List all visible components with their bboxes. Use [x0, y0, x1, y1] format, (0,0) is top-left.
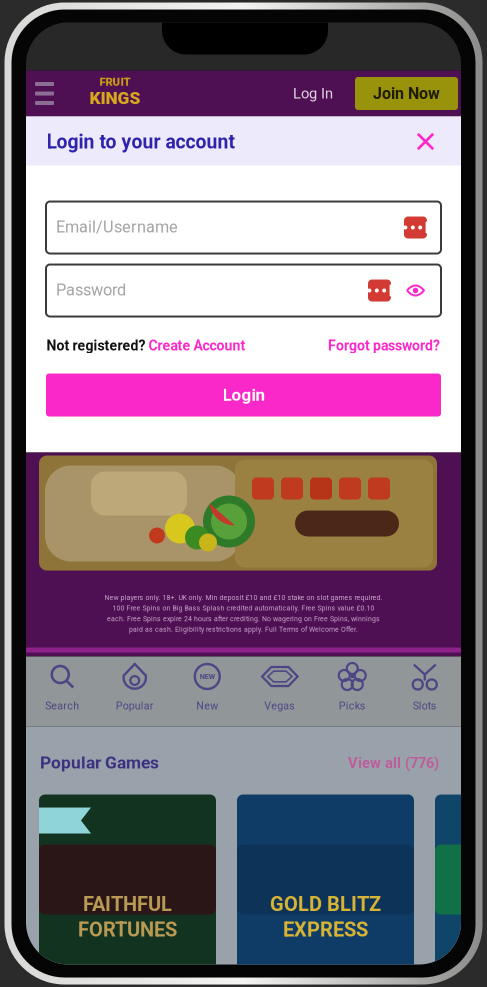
button[interactable]: Login — [46, 373, 441, 416]
staticText: Search — [45, 699, 79, 712]
staticText: EXPRESS — [283, 918, 368, 941]
button[interactable]: FAITHFUL — [39, 794, 216, 971]
button[interactable]: Join Now — [355, 77, 458, 110]
staticText: Popular — [116, 699, 154, 712]
button[interactable]: Slots — [388, 656, 461, 726]
staticText: Popular Games — [40, 752, 159, 773]
button[interactable] — [435, 794, 487, 971]
staticText: each. Free Spins expire 24 hours after c… — [107, 615, 380, 623]
button[interactable]: GOLD BLITZ — [237, 794, 414, 971]
button[interactable]: Close — [408, 124, 442, 158]
staticText: FAITHFUL — [83, 892, 172, 916]
button[interactable]: Log In — [284, 70, 342, 116]
button[interactable]: Search — [26, 656, 98, 726]
staticText: Not registered? — [46, 337, 145, 354]
staticText: NEW — [200, 672, 215, 681]
staticText: Login — [222, 385, 264, 405]
staticText: Slots — [413, 699, 437, 712]
staticText: GOLD BLITZ — [270, 892, 381, 916]
button[interactable]: Popular — [98, 656, 171, 726]
staticText: New players only. 18+. UK only. Min depo… — [104, 593, 382, 602]
staticText: Create Account — [148, 337, 245, 354]
button[interactable]: Password — [46, 264, 441, 316]
staticText: View all (776) — [348, 754, 439, 772]
staticText: Email/Username — [56, 217, 178, 237]
button[interactable]: Menu — [26, 70, 63, 116]
staticText: Log In — [293, 85, 333, 102]
staticText: 100 Free Spins on Big Bass Splash credit… — [112, 604, 374, 612]
button[interactable]: NEW — [171, 656, 243, 726]
button[interactable]: Forgot password? — [328, 337, 440, 354]
button[interactable]: Picks — [316, 656, 388, 726]
staticText: Vegas — [264, 699, 295, 712]
staticText: New — [196, 699, 218, 712]
staticText: Forgot password? — [328, 337, 440, 354]
staticText: KINGS — [89, 88, 140, 108]
staticText: Password — [56, 280, 126, 300]
button[interactable]: Vegas — [243, 656, 316, 726]
staticText: Join Now — [373, 84, 440, 103]
button[interactable]: Email/Username — [46, 201, 441, 253]
button[interactable]: View all (776) — [348, 754, 439, 772]
staticText: Login to your account — [46, 130, 235, 153]
staticText: paid as cash. Eligibility restrictions a… — [129, 625, 358, 633]
staticText: Picks — [339, 699, 366, 712]
button[interactable]: Create Account — [148, 337, 245, 354]
staticText: FORTUNES — [78, 918, 177, 941]
staticText: FRUIT — [99, 75, 130, 89]
